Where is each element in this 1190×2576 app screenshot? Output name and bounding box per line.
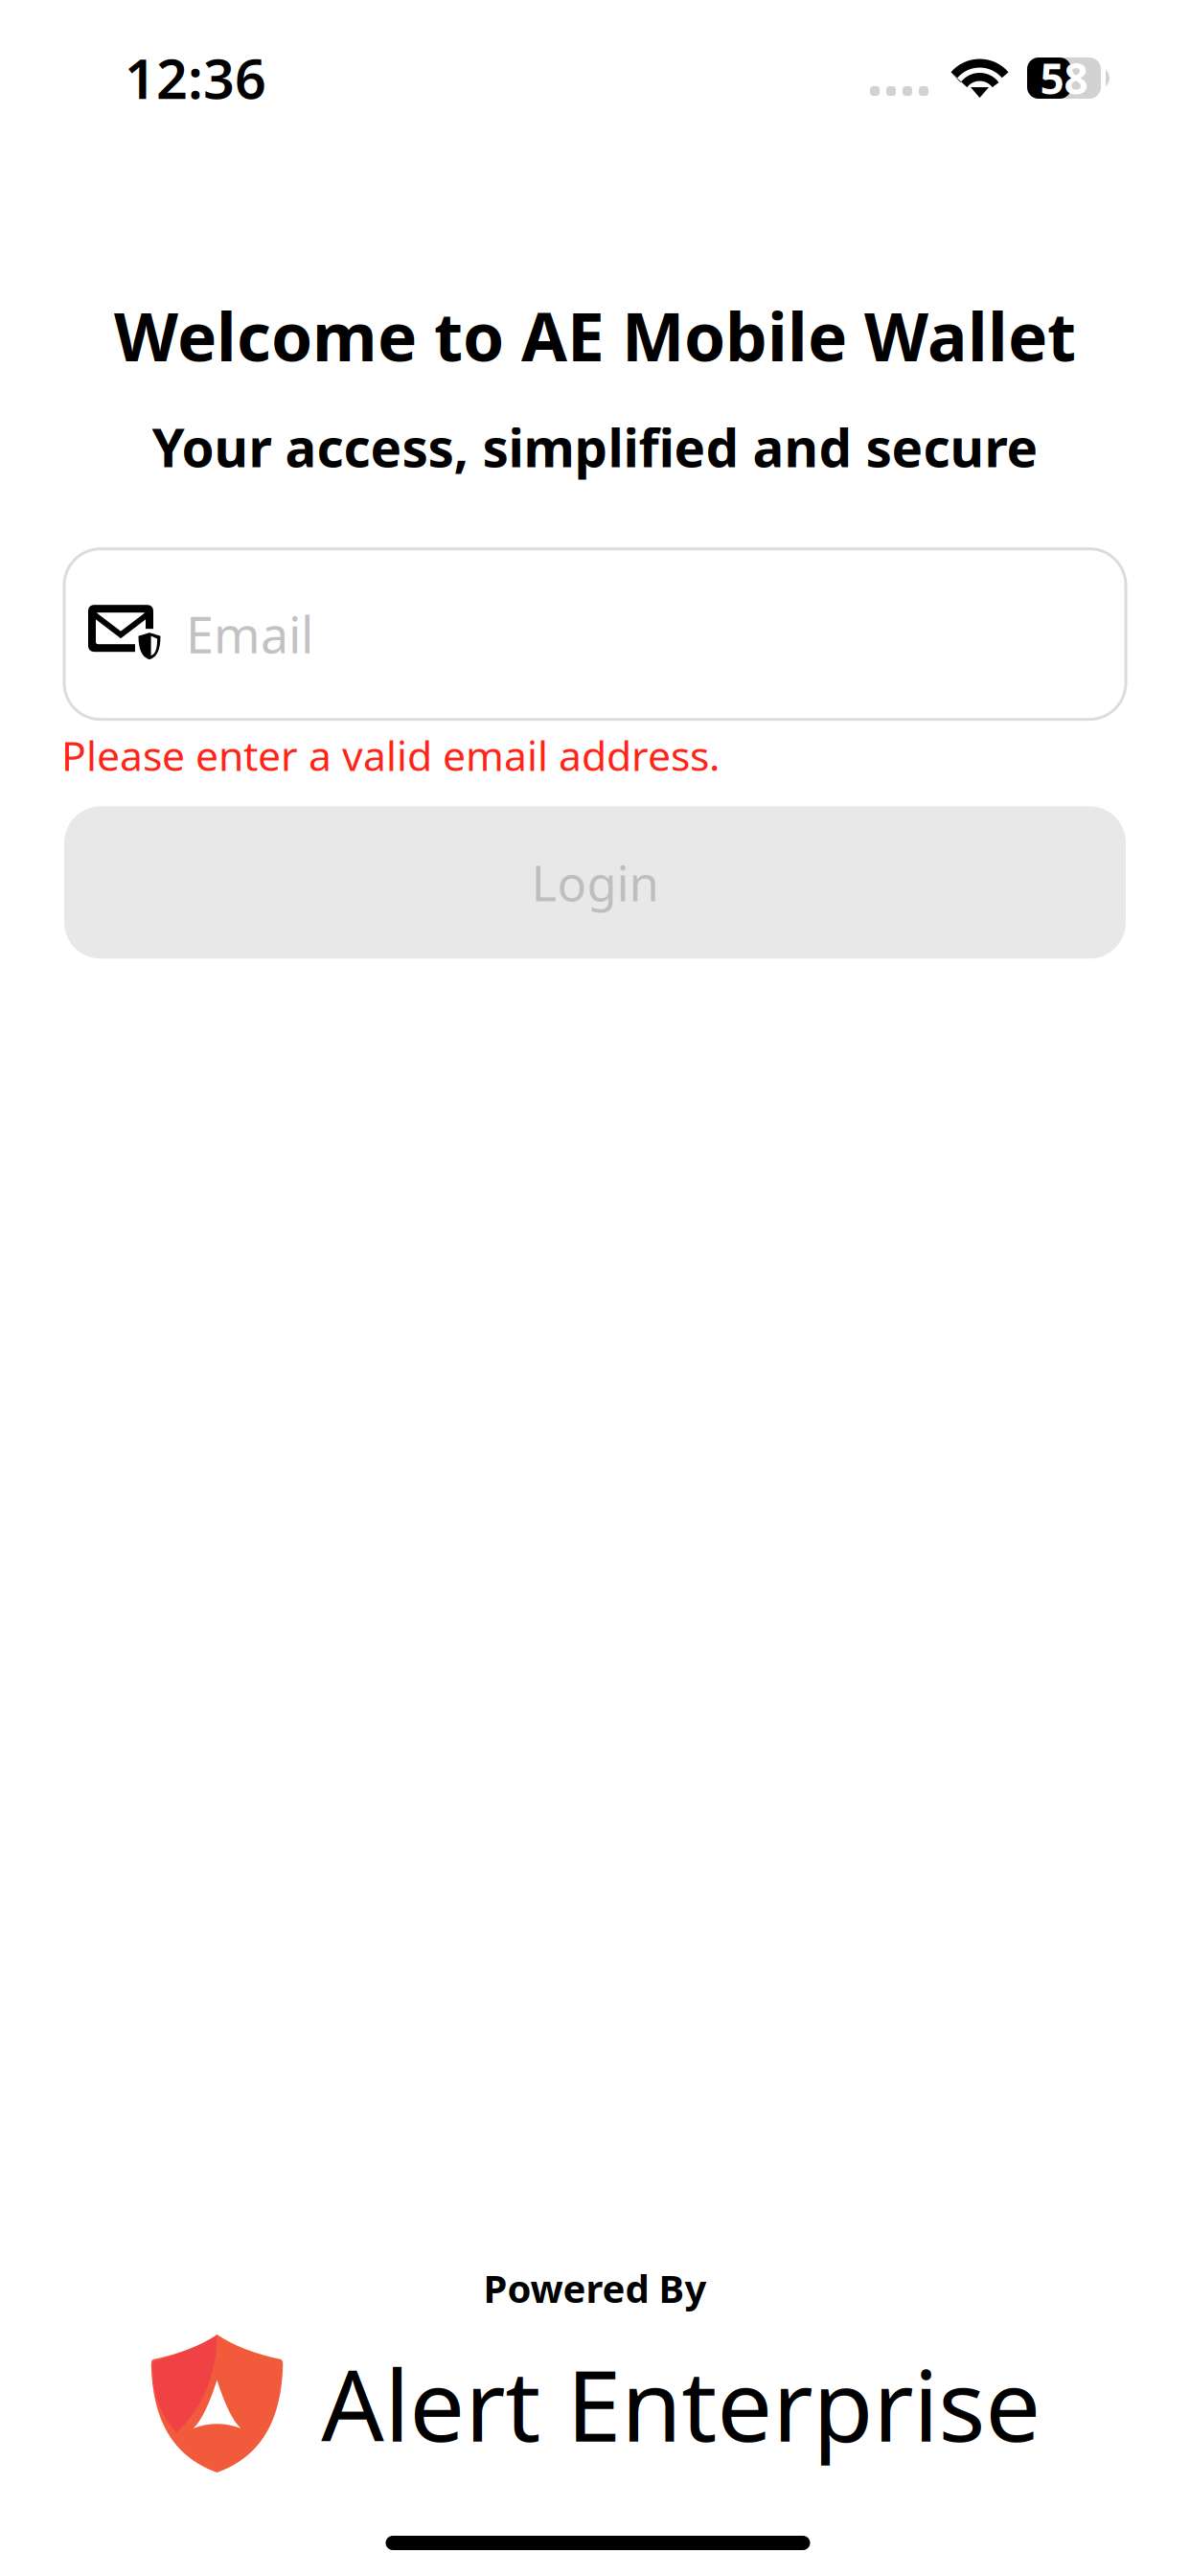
staticText: Email xyxy=(186,601,313,667)
staticText: Alert Enterprise xyxy=(321,2338,1041,2469)
staticText: Login xyxy=(531,850,659,915)
staticText: Powered By xyxy=(483,2263,707,2313)
button[interactable]: Login xyxy=(64,806,1126,959)
button[interactable]: Email xyxy=(64,549,1126,719)
staticText: Welcome to AE Mobile Wallet xyxy=(114,291,1076,380)
staticText: Your access, simplified and secure xyxy=(152,412,1038,482)
staticText: 58 xyxy=(1040,50,1088,106)
staticText: 12:36 xyxy=(125,41,266,114)
staticText: Please enter a valid email address. xyxy=(61,728,720,782)
